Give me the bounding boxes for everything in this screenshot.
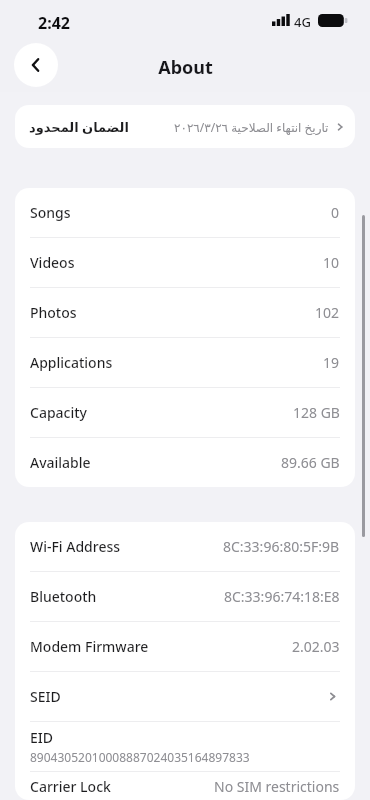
staticText: Capacity bbox=[30, 403, 87, 422]
button[interactable]: Photos bbox=[15, 288, 355, 338]
button[interactable]: Videos bbox=[15, 238, 355, 288]
staticText: Photos bbox=[30, 303, 77, 322]
button[interactable]: Bluetooth bbox=[15, 572, 355, 622]
button[interactable]: Capacity bbox=[15, 388, 355, 438]
staticText: Bluetooth bbox=[30, 587, 97, 606]
staticText: 19 bbox=[323, 353, 340, 372]
staticText: 8C:33:96:74:18:E8 bbox=[224, 587, 340, 606]
button[interactable]: الضمان المحدود bbox=[15, 105, 355, 148]
staticText: SEID bbox=[30, 687, 61, 706]
button[interactable]: EID bbox=[15, 722, 355, 772]
staticText: Available bbox=[30, 453, 91, 472]
staticText: 0 bbox=[331, 203, 340, 222]
button[interactable]: Back bbox=[14, 43, 58, 87]
staticText: الضمان المحدود bbox=[29, 118, 129, 136]
button[interactable]: Applications bbox=[15, 338, 355, 388]
staticText: About bbox=[158, 55, 213, 80]
staticText: 89043052010008887024035164897833 bbox=[30, 749, 250, 765]
staticText: 8C:33:96:80:5F:9B bbox=[223, 537, 340, 556]
staticText: Wi-Fi Address bbox=[30, 537, 121, 556]
button[interactable]: SEID bbox=[15, 672, 355, 722]
staticText: Applications bbox=[30, 353, 113, 372]
staticText: 128 GB bbox=[293, 403, 340, 422]
staticText: تاريخ انتهاء الصلاحية ٢٠٢٦/٣/٢٦ bbox=[174, 119, 329, 135]
staticText: 4G bbox=[294, 13, 311, 31]
button[interactable]: Carrier Lock bbox=[15, 772, 355, 800]
button[interactable]: Wi-Fi Address bbox=[15, 522, 355, 572]
staticText: Videos bbox=[30, 253, 75, 272]
staticText: 102 bbox=[315, 303, 340, 322]
staticText: Carrier Lock bbox=[30, 777, 111, 796]
staticText: 2:42 bbox=[38, 12, 70, 34]
staticText: Songs bbox=[30, 203, 71, 222]
button[interactable]: Available bbox=[15, 438, 355, 487]
staticText: 2.02.03 bbox=[292, 637, 340, 656]
staticText: 89.66 GB bbox=[281, 453, 340, 472]
button[interactable]: Songs bbox=[15, 188, 355, 238]
staticText: No SIM restrictions bbox=[214, 777, 340, 796]
button[interactable]: Modem Firmware bbox=[15, 622, 355, 672]
staticText: 10 bbox=[323, 253, 340, 272]
staticText: EID bbox=[30, 728, 53, 747]
staticText: Modem Firmware bbox=[30, 637, 149, 656]
